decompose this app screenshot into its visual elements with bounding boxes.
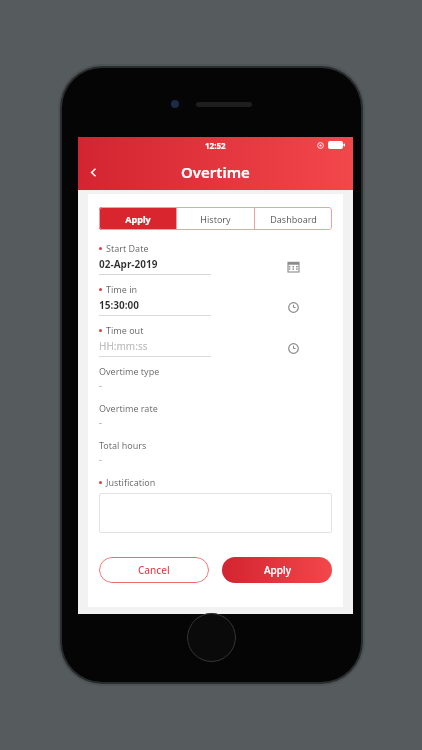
staticText: Apply (125, 213, 151, 225)
staticText: Start Date (106, 242, 149, 254)
staticText: Overtime rate (99, 402, 158, 414)
button[interactable]: Cancel (99, 557, 209, 583)
button[interactable]: 02-Apr-2019 (99, 257, 332, 275)
staticText: Justification (106, 476, 156, 488)
staticText: 02-Apr-2019 (99, 257, 158, 271)
staticText: - (99, 379, 102, 391)
button[interactable]: Apply (222, 557, 332, 583)
staticText: Time in (106, 283, 138, 295)
staticText: 12:52 (205, 140, 226, 151)
staticText: Overtime type (99, 365, 160, 377)
staticText: - (99, 416, 102, 428)
button[interactable] (99, 493, 332, 533)
button[interactable]: Apply (99, 207, 176, 230)
staticText: - (99, 453, 102, 465)
staticText: HH:mm:ss (99, 339, 148, 353)
button[interactable]: Home (187, 613, 236, 662)
staticText: History (200, 213, 231, 225)
button[interactable]: Dashboard (255, 207, 332, 230)
button[interactable]: Pick date (284, 257, 302, 275)
staticText: Time out (106, 324, 144, 336)
staticText: Dashboard (270, 213, 317, 225)
button[interactable]: Pick time (284, 298, 302, 316)
staticText: Apply (264, 563, 291, 577)
button[interactable]: Pick time (284, 339, 302, 357)
button[interactable]: 15:30:00 (99, 298, 332, 316)
staticText: 15:30:00 (99, 298, 139, 312)
button[interactable]: HH:mm:ss (99, 339, 332, 357)
staticText: Total hours (99, 439, 147, 451)
staticText: Overtime (181, 162, 250, 182)
staticText: Cancel (138, 563, 170, 577)
button[interactable]: Back (78, 157, 108, 187)
button[interactable]: History (177, 207, 254, 230)
